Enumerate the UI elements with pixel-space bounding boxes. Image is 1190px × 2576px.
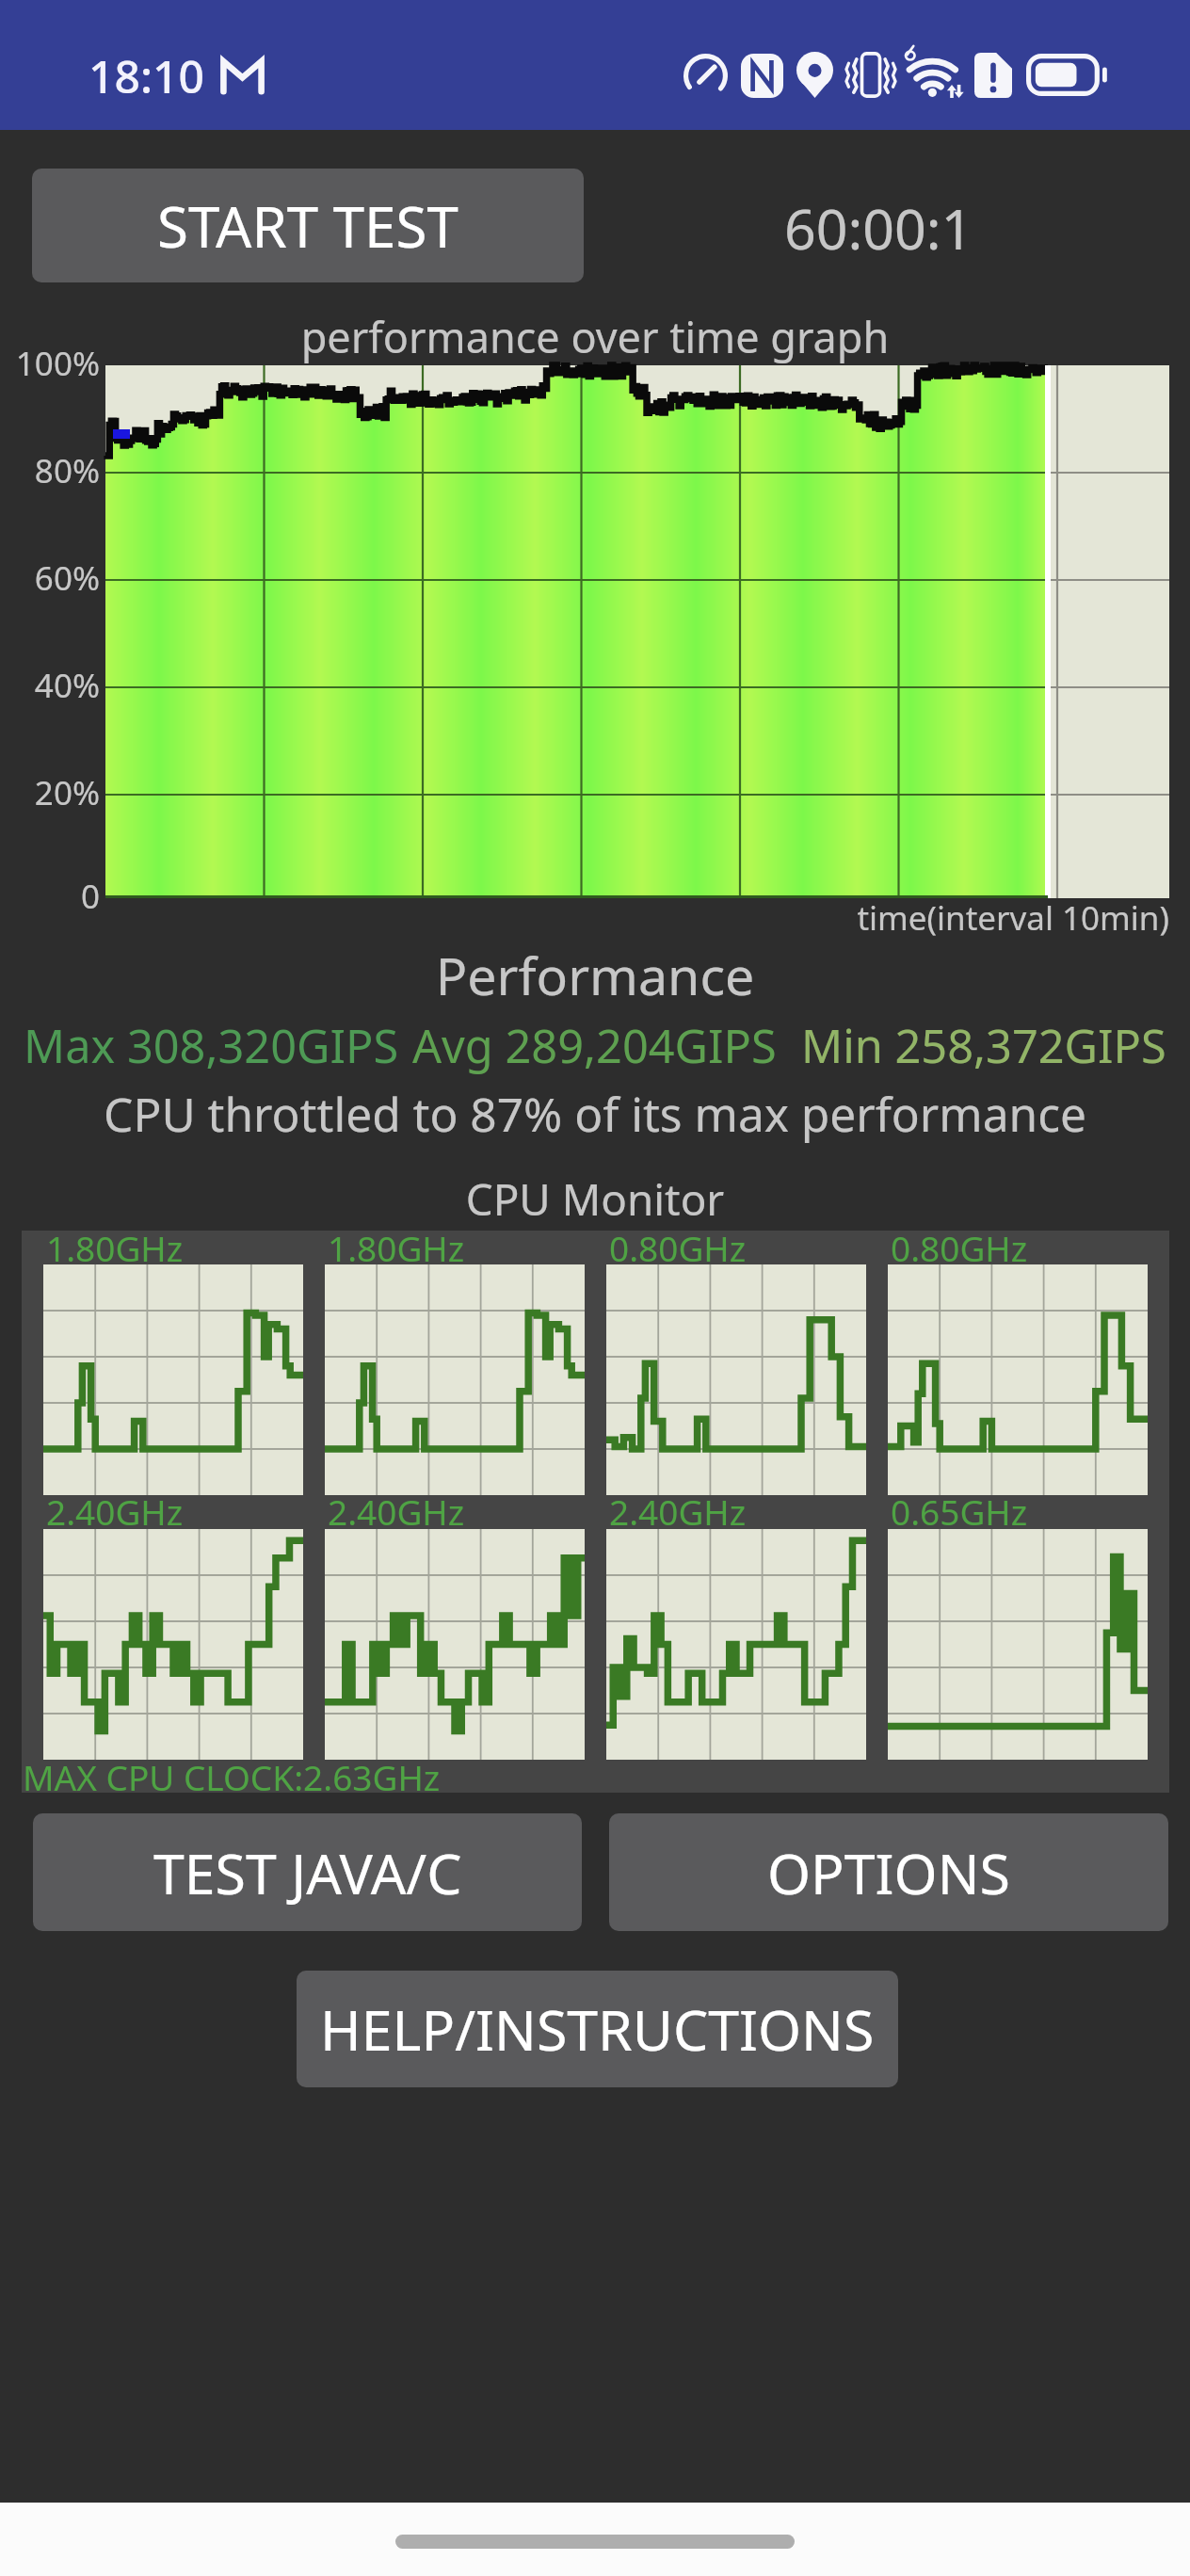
- staticText: 1.80GHz: [46, 1224, 184, 1271]
- staticText: CPU throttled to 87% of its max performa…: [0, 1082, 1190, 1146]
- staticText: time(interval 10min): [847, 895, 1169, 941]
- staticText: 1.80GHz: [328, 1224, 465, 1271]
- staticText: 2.40GHz: [46, 1488, 184, 1535]
- staticText: HELP/INSTRUCTIONS: [320, 1991, 875, 2067]
- other: Battery: [1026, 54, 1109, 96]
- other: Data saver: [683, 54, 728, 98]
- button[interactable]: TEST JAVA/C: [33, 1813, 582, 1931]
- staticText: Max 308,320GIPS: [24, 1014, 399, 1076]
- staticText: 2.40GHz: [328, 1488, 465, 1535]
- other: Ringer set to vibrate: [844, 52, 897, 98]
- button[interactable]: START TEST: [32, 169, 584, 282]
- button[interactable]: HELP/INSTRUCTIONS: [297, 1971, 898, 2087]
- staticText: TEST JAVA/C: [153, 1835, 462, 1910]
- staticText: 0.80GHz: [609, 1224, 747, 1271]
- staticText: 80%: [0, 448, 100, 493]
- staticText: OPTIONS: [767, 1835, 1010, 1910]
- staticText: START TEST: [157, 187, 458, 265]
- staticText: MAX CPU CLOCK:2.63GHz: [23, 1753, 441, 1800]
- other: Gmail: [219, 56, 265, 94]
- staticText: 0: [0, 874, 100, 919]
- other: Location in use: [796, 52, 833, 98]
- staticText: 60%: [0, 555, 100, 601]
- staticText: 0.65GHz: [891, 1488, 1028, 1535]
- staticText: 18:10: [88, 45, 204, 106]
- button[interactable]: OPTIONS: [609, 1813, 1168, 1931]
- staticText: 20%: [0, 770, 100, 815]
- staticText: 0.80GHz: [891, 1224, 1028, 1271]
- staticText: 40%: [0, 663, 100, 708]
- staticText: Min 258,372GIPS: [801, 1014, 1166, 1076]
- staticText: 2.40GHz: [609, 1488, 747, 1535]
- other: Wi-Fi 6 connected: [904, 47, 966, 98]
- other: No SIM card: [974, 53, 1012, 98]
- staticText: 100%: [0, 341, 100, 386]
- other: NFC enabled: [741, 54, 783, 98]
- staticText: Avg 289,204GIPS: [412, 1014, 777, 1076]
- staticText: performance over time graph: [0, 308, 1190, 365]
- staticText: CPU Monitor: [0, 1169, 1190, 1228]
- staticText: 60:00:1: [784, 190, 973, 266]
- staticText: Performance: [0, 940, 1190, 1011]
